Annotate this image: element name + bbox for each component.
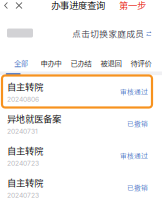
button[interactable]: 全部	[6, 47, 36, 79]
staticText: 全部	[14, 58, 28, 68]
staticText: 待评价	[130, 58, 151, 68]
button[interactable]: 被退回	[96, 47, 126, 79]
staticText: 第一步	[119, 0, 146, 12]
staticText: 已撤销	[127, 183, 148, 192]
button[interactable]: 待评价	[126, 47, 156, 79]
staticText: 20240731	[7, 127, 38, 135]
staticText: 已办结	[70, 58, 91, 68]
button[interactable]: 已办结	[66, 47, 96, 79]
staticText: 自主转院	[7, 144, 43, 157]
staticText: 被退回	[100, 58, 121, 68]
staticText: 点击切换家庭成员	[72, 27, 144, 40]
staticText: 办事进度查询	[51, 0, 105, 12]
button[interactable]: 自主转院	[0, 75, 162, 107]
staticText: 自主转院	[7, 80, 43, 93]
staticText: 20240723	[7, 159, 39, 167]
staticText: 20240723	[7, 191, 39, 199]
staticText: 已撤销	[127, 119, 148, 128]
button[interactable]: Close	[11, 0, 27, 13]
staticText: 审核通过	[120, 87, 148, 96]
staticText: 自主转院	[7, 176, 43, 189]
button[interactable]: 异地就医备案	[0, 107, 162, 139]
staticText: 异地就医备案	[7, 112, 61, 125]
button[interactable]: 自主转院	[0, 171, 162, 200]
button[interactable]: 点击切换家庭成员	[72, 27, 152, 40]
button[interactable]: 自主转院	[0, 139, 162, 171]
staticText: 20240806	[7, 95, 39, 103]
staticText: 审核通过	[120, 151, 148, 160]
button[interactable]: 申办中	[36, 47, 66, 79]
button[interactable]: Back	[0, 0, 13, 13]
staticText: 申办中	[40, 58, 61, 68]
